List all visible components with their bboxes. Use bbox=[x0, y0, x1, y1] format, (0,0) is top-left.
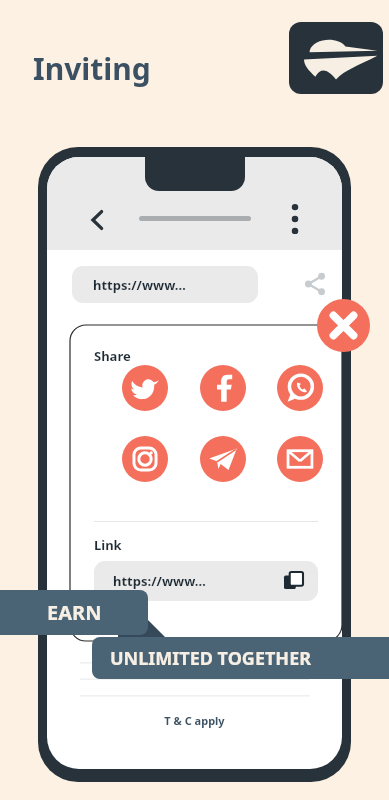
staticText: https://www… bbox=[93, 276, 186, 294]
button[interactable]: Twitter bbox=[122, 365, 168, 411]
button[interactable]: Telegram bbox=[200, 436, 246, 482]
button[interactable]: https://www… bbox=[94, 561, 318, 601]
button[interactable]: Facebook bbox=[200, 365, 246, 411]
button[interactable]: App logo bbox=[289, 22, 383, 94]
staticText: EARN bbox=[47, 599, 102, 626]
button[interactable]: Instagram bbox=[122, 436, 168, 482]
staticText: UNLIMITED TOGETHER bbox=[110, 646, 312, 671]
button[interactable]: Close bbox=[317, 299, 370, 352]
other: Copy link bbox=[284, 572, 303, 591]
staticText: https://www… bbox=[113, 572, 206, 590]
staticText: Inviting bbox=[33, 48, 151, 89]
button[interactable]: Back bbox=[83, 205, 113, 235]
button[interactable]: https://www… bbox=[72, 266, 258, 303]
button[interactable]: T & C apply bbox=[47, 713, 342, 728]
button[interactable]: UNLIMITED TOGETHER bbox=[92, 637, 389, 679]
staticText: Link bbox=[94, 536, 122, 554]
staticText: T & C apply bbox=[164, 713, 225, 728]
button[interactable]: Share bbox=[300, 269, 330, 299]
staticText: Share bbox=[94, 347, 131, 365]
button[interactable]: WhatsApp bbox=[277, 365, 323, 411]
button[interactable]: Email bbox=[277, 436, 323, 482]
button[interactable]: More options bbox=[283, 201, 307, 237]
button[interactable]: EARN bbox=[0, 590, 148, 635]
